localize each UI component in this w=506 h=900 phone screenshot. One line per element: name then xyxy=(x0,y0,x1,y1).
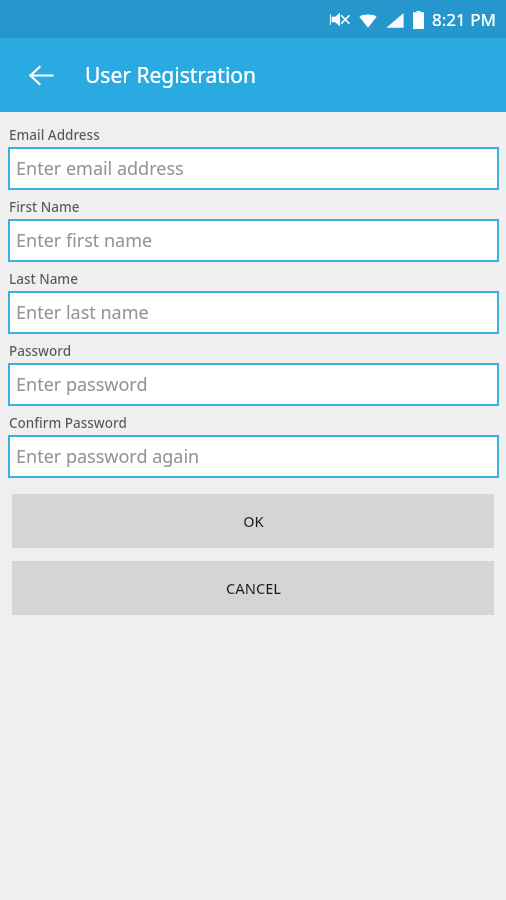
button[interactable]: CANCEL xyxy=(12,561,494,615)
staticText: Enter first name xyxy=(16,228,153,253)
staticText: Enter last name xyxy=(16,300,149,325)
button[interactable]: Enter password again xyxy=(8,435,499,478)
staticText: Last Name xyxy=(9,270,78,288)
button[interactable]: OK xyxy=(12,494,494,548)
button[interactable]: Enter email address xyxy=(8,147,499,190)
button[interactable]: Enter first name xyxy=(8,219,499,262)
button[interactable]: Enter password xyxy=(8,363,499,406)
staticText: Enter password xyxy=(16,372,148,397)
staticText: Enter email address xyxy=(16,156,184,181)
staticText: Enter password again xyxy=(16,444,200,469)
staticText: 8:21 PM xyxy=(432,8,496,31)
staticText: Confirm Password xyxy=(9,414,127,432)
button[interactable]: Enter last name xyxy=(8,291,499,334)
staticText: First Name xyxy=(9,198,80,216)
staticText: User Registration xyxy=(85,61,256,90)
staticText: Password xyxy=(9,342,72,360)
button[interactable]: Back xyxy=(16,50,66,100)
staticText: CANCEL xyxy=(226,578,281,598)
staticText: OK xyxy=(243,511,264,531)
staticText: Email Address xyxy=(9,126,100,144)
